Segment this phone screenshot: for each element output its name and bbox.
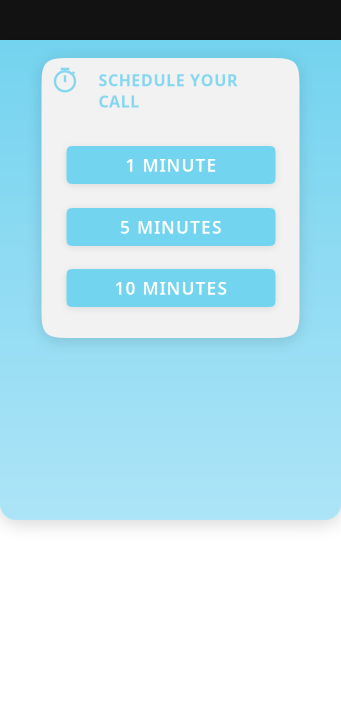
staticText: SCHEDULE YOUR CALL xyxy=(98,69,283,91)
button[interactable]: 10 MINUTES xyxy=(66,269,275,307)
staticText: 1 MINUTE xyxy=(125,153,216,176)
staticText: 5 MINUTES xyxy=(120,215,222,238)
staticText: 10 MINUTES xyxy=(114,276,227,299)
button[interactable]: 5 MINUTES xyxy=(66,208,275,246)
button[interactable]: 1 MINUTE xyxy=(66,146,275,184)
